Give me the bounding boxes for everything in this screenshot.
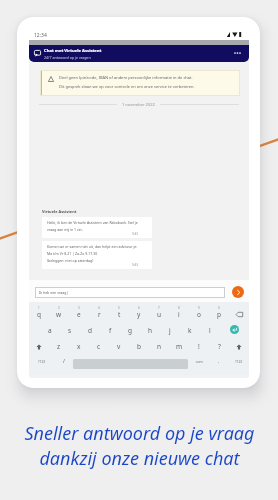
staticText: b — [137, 342, 141, 351]
staticText: 9 — [198, 306, 200, 310]
staticText: 6 — [138, 306, 140, 310]
staticText: ?123 — [235, 359, 243, 364]
button[interactable]: l — [200, 322, 220, 337]
button[interactable]: / — [54, 354, 73, 369]
button[interactable]: Enter — [230, 325, 239, 334]
button[interactable]: c — [89, 338, 109, 353]
button[interactable]: ?123 — [228, 354, 249, 369]
staticText: 9:43 — [132, 232, 138, 236]
staticText: Sneller antwoord op je vraag — [24, 421, 255, 446]
button[interactable]: Shift — [29, 338, 49, 353]
button[interactable]: k — [180, 322, 200, 337]
button[interactable]: 3 — [69, 306, 89, 321]
staticText: 24/7 antwoord op je vragen — [44, 55, 91, 60]
button[interactable]: Ik heb een vraag| — [35, 287, 225, 298]
staticText: 3 — [78, 306, 80, 310]
staticText: Deel geen (pin)code, IBAN of andere pers… — [59, 75, 193, 80]
staticText: c — [97, 342, 101, 351]
staticText: v — [117, 342, 121, 351]
staticText: z — [57, 342, 61, 351]
staticText: / — [63, 358, 65, 365]
staticText: y — [137, 310, 141, 319]
button[interactable]: a — [40, 322, 60, 337]
staticText: ?123 — [38, 359, 46, 364]
staticText: 1 — [38, 306, 40, 310]
button[interactable]: 6 — [129, 306, 149, 321]
button[interactable]: 0 — [209, 306, 229, 321]
staticText: o — [197, 310, 201, 319]
staticText: dankzij onze nieuwe chat — [39, 446, 240, 471]
staticText: Ik heb een vraag| — [39, 290, 69, 295]
button[interactable]: m — [169, 338, 189, 353]
staticText: i — [178, 310, 180, 319]
staticText: 4 — [98, 306, 100, 310]
staticText: e — [77, 310, 81, 319]
staticText: Hallo, ik ben de Virtuele Assistent van … — [47, 220, 138, 232]
staticText: g — [128, 326, 132, 335]
button[interactable]: Send message — [232, 286, 244, 298]
button[interactable]: Hallo, ik ben de Virtuele Assistent van … — [42, 217, 152, 238]
staticText: Dit gesprek slaan we op voor controle en… — [59, 84, 195, 89]
button[interactable]: ? — [209, 338, 229, 353]
button[interactable]: f — [100, 322, 120, 337]
button[interactable]: ! — [189, 338, 209, 353]
other: More options — [234, 52, 241, 54]
button[interactable]: d — [80, 322, 100, 337]
button[interactable]: g — [120, 322, 140, 337]
staticText: n — [157, 342, 162, 351]
staticText: Komen we er samen niet uit, dan helpt ee… — [47, 244, 138, 263]
button[interactable]: z — [49, 338, 69, 353]
button[interactable]: v — [109, 338, 129, 353]
button[interactable]: Shift — [229, 338, 249, 353]
staticText: t — [118, 310, 121, 319]
staticText: s — [68, 326, 72, 335]
staticText: m — [176, 342, 183, 351]
button[interactable]: 2 — [49, 306, 69, 321]
staticText: l — [209, 326, 211, 335]
button[interactable]: s — [60, 322, 80, 337]
button[interactable]: n — [149, 338, 169, 353]
staticText: 8 — [178, 306, 180, 310]
staticText: q — [37, 310, 41, 319]
staticText: 9:43 — [132, 263, 138, 267]
button[interactable]: .com — [188, 354, 209, 369]
staticText: .com — [195, 359, 203, 364]
button[interactable]: 8 — [169, 306, 189, 321]
staticText: 0 — [218, 306, 220, 310]
button[interactable]: ?123 — [29, 354, 54, 369]
staticText: j — [169, 326, 171, 335]
button[interactable]: Chat met Virtuele Assistent — [29, 45, 249, 62]
button[interactable]: x — [69, 338, 89, 353]
staticText: d — [88, 326, 92, 335]
button[interactable]: b — [129, 338, 149, 353]
staticText: k — [188, 326, 192, 335]
button[interactable]: h — [140, 322, 160, 337]
button[interactable]: 4 — [89, 306, 109, 321]
staticText: a — [48, 326, 52, 335]
button[interactable]: 1 — [29, 306, 49, 321]
staticText: f — [109, 326, 112, 335]
button[interactable]: 5 — [109, 306, 129, 321]
staticText: x — [77, 342, 81, 351]
staticText: 2 — [58, 306, 60, 310]
staticText: 1 november 2022 — [122, 102, 155, 107]
staticText: r — [98, 310, 101, 319]
button[interactable]: Backspace — [229, 306, 249, 321]
staticText: 5 — [118, 306, 120, 310]
button[interactable]: 7 — [149, 306, 169, 321]
staticText: 12:34 — [34, 32, 47, 39]
staticText: . — [218, 358, 220, 365]
staticText: u — [157, 310, 162, 319]
staticText: Chat met Virtuele Assistent — [44, 48, 102, 54]
button[interactable]: Komen we er samen niet uit, dan helpt ee… — [42, 241, 152, 269]
button[interactable]: j — [160, 322, 180, 337]
staticText: p — [217, 310, 221, 319]
button[interactable]: 9 — [189, 306, 209, 321]
staticText: w — [56, 310, 62, 319]
staticText: 7 — [158, 306, 160, 310]
staticText: ! — [198, 342, 200, 351]
staticText: h — [148, 326, 153, 335]
staticText: ? — [218, 342, 221, 351]
